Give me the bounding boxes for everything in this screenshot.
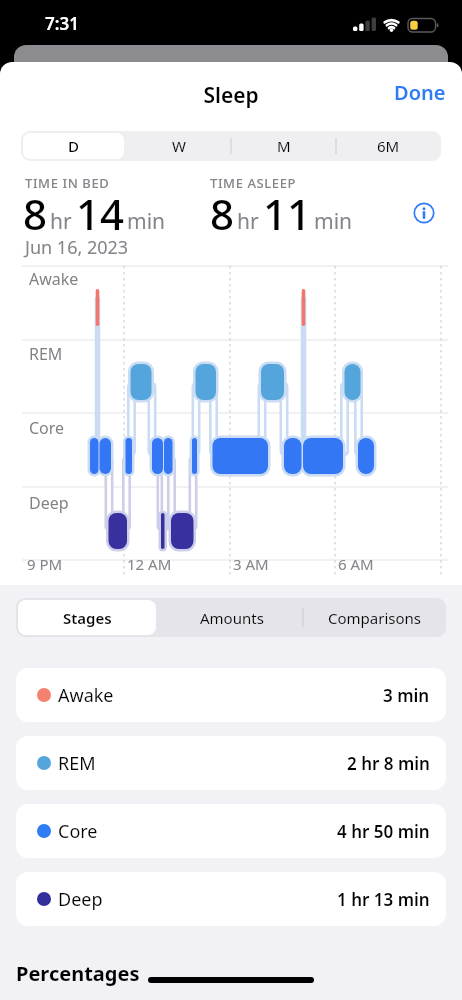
button[interactable]: Awake (16, 668, 446, 722)
staticText: Core (29, 417, 65, 439)
button[interactable]: 6M (336, 131, 441, 161)
staticText: Deep (58, 887, 103, 912)
button[interactable]: Stages (18, 600, 156, 635)
button[interactable]: W (126, 131, 231, 161)
staticText: Deep (29, 492, 69, 514)
staticText: Percentages (16, 960, 140, 987)
staticText: Awake (58, 683, 114, 708)
staticText: hr (50, 207, 72, 236)
staticText: Stages (63, 608, 112, 628)
button[interactable]: Core (16, 804, 446, 858)
staticText: min (314, 207, 353, 236)
staticText: 12 AM (127, 554, 172, 574)
staticText: Awake (29, 268, 79, 290)
staticText: 1 hr 13 min (337, 888, 430, 911)
staticText: 6M (377, 136, 400, 156)
staticText: hr (237, 207, 259, 236)
staticText: 3 AM (233, 554, 269, 574)
staticText: 9 PM (27, 554, 63, 574)
staticText: Jun 16, 2023 (25, 235, 129, 260)
staticText: 8 (23, 185, 48, 242)
staticText: REM (29, 343, 63, 365)
staticText: Done (394, 79, 446, 106)
button[interactable]: Done (390, 74, 450, 110)
staticText: 3 min (383, 684, 430, 707)
staticText: REM (58, 751, 96, 776)
staticText: Comparisons (328, 608, 422, 628)
staticText: Sleep (0, 81, 462, 110)
staticText: Core (58, 819, 98, 844)
button[interactable]: REM (16, 736, 446, 790)
staticText: 6 AM (338, 554, 374, 574)
button[interactable]: M (231, 131, 336, 161)
staticText: 2 hr 8 min (347, 752, 430, 775)
button[interactable]: Amounts (160, 598, 303, 637)
staticText: Amounts (200, 608, 264, 628)
button[interactable]: Deep (16, 872, 446, 926)
staticText: D (68, 136, 79, 156)
staticText: 11 (263, 185, 312, 242)
staticText: 14 (76, 185, 125, 242)
staticText: TIME ASLEEP (210, 174, 297, 192)
button[interactable]: Comparisons (303, 598, 446, 637)
staticText: TIME IN BED (25, 174, 110, 192)
staticText: 7:31 (45, 12, 79, 35)
staticText: M (277, 136, 291, 156)
button[interactable] (406, 195, 442, 231)
staticText: 8 (210, 185, 235, 242)
staticText: W (172, 136, 186, 156)
staticText: min (127, 207, 166, 236)
staticText: 4 hr 50 min (337, 820, 430, 843)
button[interactable]: D (23, 133, 124, 159)
